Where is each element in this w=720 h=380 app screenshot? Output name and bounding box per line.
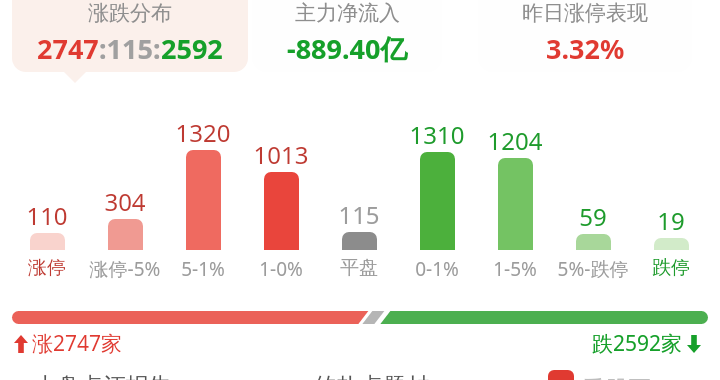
staticText: 1-0% <box>236 256 326 282</box>
button[interactable]: 1-0% <box>236 256 326 282</box>
button[interactable]: 昨日涨停表现 <box>478 0 692 72</box>
button[interactable] <box>30 233 65 250</box>
button[interactable]: 1-5% <box>470 256 560 282</box>
staticText: 涨跌分布 <box>88 0 172 26</box>
button[interactable]: 涨跌分布 <box>12 0 248 72</box>
staticText: 涨2747家 <box>32 329 123 358</box>
staticText: -889.40亿 <box>287 30 408 67</box>
staticText: 3.32% <box>546 30 625 67</box>
button[interactable]: 涨停-5% <box>80 256 170 282</box>
button[interactable]: 主力净流入 <box>252 0 442 72</box>
staticText: 1320 <box>163 116 243 149</box>
staticText: 大盘点评报告 <box>34 372 172 380</box>
button[interactable]: 跌2592家 <box>592 329 701 358</box>
staticText: 2747 <box>37 30 99 67</box>
other: Down <box>687 335 701 353</box>
button[interactable] <box>654 238 689 250</box>
button[interactable] <box>498 158 533 250</box>
staticText: 59 <box>553 200 633 233</box>
staticText: 5-1% <box>158 256 248 282</box>
staticText: 0-1% <box>392 256 482 282</box>
button[interactable]: 平盘 <box>314 256 404 280</box>
staticText: 1310 <box>397 118 477 151</box>
button[interactable] <box>342 232 377 250</box>
button[interactable]: 5%-跌停 <box>548 256 638 282</box>
button[interactable]: App icon <box>548 370 574 380</box>
staticText: 1-5% <box>470 256 560 282</box>
staticText: 昨日涨停表现 <box>522 0 648 26</box>
staticText: 1204 <box>475 124 555 157</box>
staticText: 跌停 <box>626 256 716 280</box>
staticText: 的热点题材 <box>314 372 429 380</box>
button[interactable]: 涨停 <box>2 256 92 280</box>
button[interactable] <box>108 219 143 250</box>
staticText: 平盘 <box>314 256 404 280</box>
staticText: 主力净流入 <box>295 0 400 26</box>
button[interactable]: 跌停 <box>626 256 716 280</box>
button[interactable] <box>186 150 221 250</box>
staticText: 115 <box>319 198 399 231</box>
staticText: 5%-跌停 <box>548 256 638 282</box>
button[interactable] <box>420 152 455 250</box>
button[interactable]: 5-1% <box>158 256 248 282</box>
staticText: 跌2592家 <box>592 329 683 358</box>
staticText: 爱股票APP <box>582 372 694 380</box>
staticText: 1013 <box>241 138 321 171</box>
staticText: :115: <box>99 30 161 67</box>
button[interactable]: 0-1% <box>392 256 482 282</box>
staticText: 19 <box>631 204 711 237</box>
other: Up <box>14 335 28 353</box>
button[interactable] <box>576 234 611 250</box>
staticText: 304 <box>85 185 165 218</box>
staticText: 110 <box>7 199 87 232</box>
button[interactable]: Up <box>14 329 123 358</box>
staticText: 涨停 <box>2 256 92 280</box>
staticText: 2592 <box>161 30 223 67</box>
staticText: 涨停-5% <box>80 256 170 282</box>
button[interactable] <box>264 172 299 250</box>
